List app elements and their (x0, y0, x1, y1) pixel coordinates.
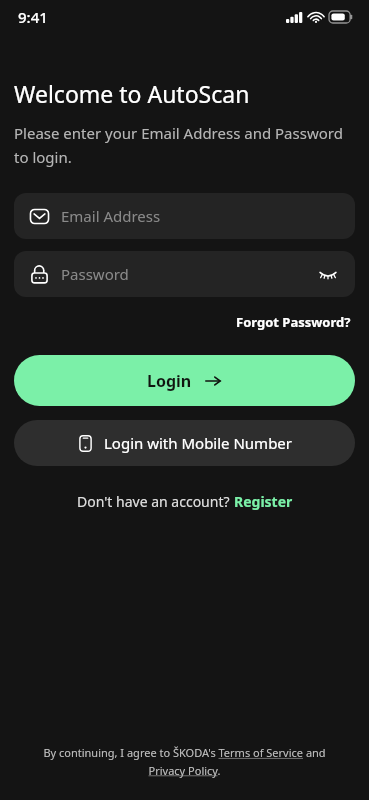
staticText: Please enter your Email Address and Pass… (14, 123, 355, 167)
staticText: Don't have an account? (77, 492, 234, 511)
button[interactable]: Login with Mobile Number (14, 420, 355, 466)
staticText: Password (61, 264, 315, 284)
staticText: Login with Mobile Number (104, 433, 293, 453)
button[interactable]: By continuing, I agree to ŠKODA's Terms … (26, 745, 343, 778)
staticText: Login (147, 370, 192, 392)
staticText: Register (234, 492, 293, 511)
button[interactable]: Email Address (14, 193, 355, 239)
staticText: Welcome to AutoScan (14, 78, 250, 109)
staticText: Forgot Password? (236, 313, 351, 331)
button[interactable]: Don't have an account? (73, 488, 297, 515)
button[interactable]: Password (14, 251, 355, 297)
button[interactable]: Show password (315, 261, 341, 287)
staticText: 9:41 (18, 7, 48, 27)
button[interactable]: Forgot Password? (232, 309, 355, 335)
button[interactable]: Login (14, 355, 355, 406)
staticText: Email Address (61, 206, 161, 226)
